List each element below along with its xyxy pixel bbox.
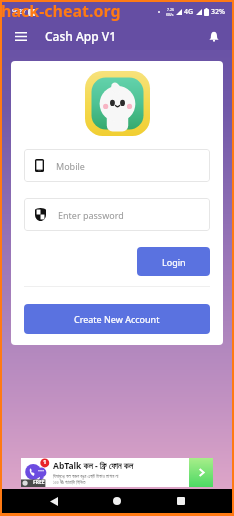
button[interactable]: Create New Account bbox=[24, 304, 210, 334]
button[interactable]: Menu bbox=[9, 24, 33, 48]
button[interactable]: Login bbox=[137, 247, 210, 276]
button[interactable]: Recents bbox=[172, 492, 190, 510]
staticText: ১০০ % গ্যারান্টি নিশ্চিত bbox=[53, 479, 86, 485]
staticText: Cash App V1 bbox=[45, 28, 117, 44]
staticText: 1 bbox=[43, 458, 47, 466]
button[interactable]: Open ad bbox=[189, 458, 213, 487]
staticText: Login bbox=[162, 256, 186, 268]
staticText: FREE bbox=[33, 479, 45, 486]
staticText: Enter password bbox=[58, 209, 124, 221]
staticText: বিনামূল্যে কল করুন বন্ধুর একটি টাকাও লাগ… bbox=[53, 473, 119, 479]
staticText: 7.26 bbox=[167, 7, 174, 12]
staticText: KB/s bbox=[166, 12, 174, 17]
staticText: 9:27 bbox=[12, 7, 26, 17]
staticText: hack-cheat.org bbox=[1, 0, 121, 22]
staticText: 32% bbox=[211, 7, 225, 17]
button[interactable]: Enter password bbox=[24, 198, 210, 231]
staticText: 4G bbox=[184, 7, 194, 17]
staticText: Mobile bbox=[56, 160, 85, 172]
staticText: AbTalk কল - ফ্রি ফোন কল bbox=[53, 460, 133, 472]
button[interactable]: Notifications bbox=[202, 24, 226, 48]
staticText: Create New Account bbox=[74, 313, 160, 325]
button[interactable]: Back bbox=[45, 492, 63, 510]
button[interactable]: Home bbox=[108, 492, 126, 510]
button[interactable]: Mobile bbox=[24, 149, 210, 182]
